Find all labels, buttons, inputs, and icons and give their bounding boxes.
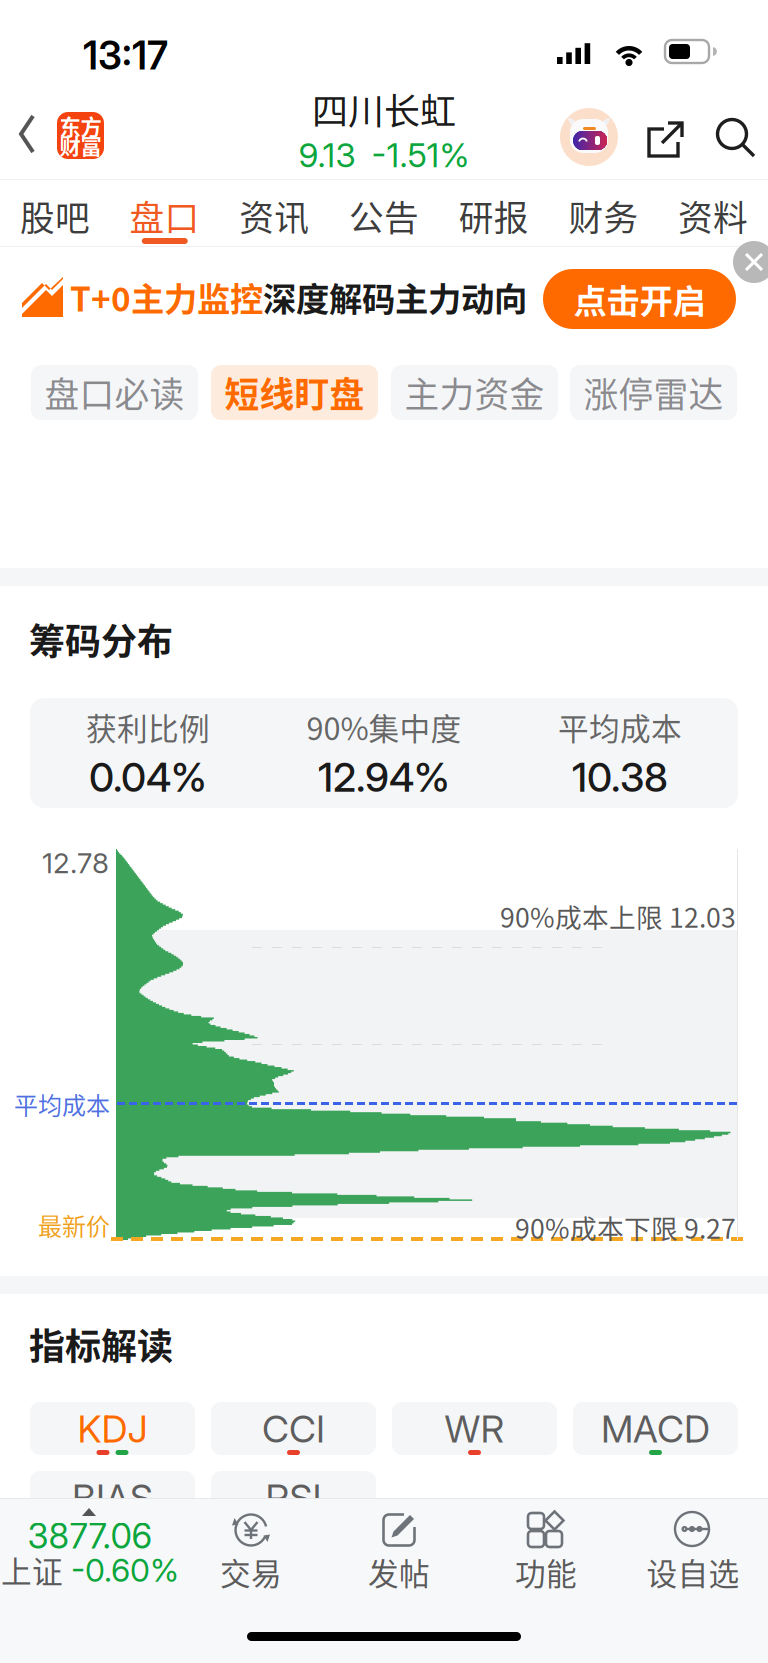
staticText: 指标解读 bbox=[29, 1318, 173, 1370]
button[interactable]: 短线盯盘 bbox=[211, 365, 378, 420]
staticText: 交易 bbox=[220, 1550, 282, 1594]
button[interactable]: 3877.06 bbox=[0, 1498, 200, 1598]
button[interactable]: 点击开启 bbox=[543, 269, 736, 329]
staticText: CCI bbox=[262, 1406, 325, 1452]
staticText: MACD bbox=[601, 1406, 710, 1452]
button[interactable]: 涨停雷达 bbox=[570, 365, 737, 420]
button[interactable]: 搜索 bbox=[707, 109, 765, 167]
staticText: 东方 bbox=[59, 111, 101, 141]
button[interactable]: 研报 bbox=[439, 180, 548, 247]
staticText: 90%成本上限 12.03 bbox=[500, 897, 736, 935]
button[interactable]: 东方财富 bbox=[57, 112, 104, 159]
button[interactable]: BIAS bbox=[30, 1471, 195, 1524]
staticText: 盘口必读 bbox=[44, 367, 184, 418]
staticText: 资料 bbox=[678, 191, 748, 241]
button[interactable]: 设自选 bbox=[626, 1498, 760, 1598]
staticText: T+0主力监控 bbox=[70, 273, 263, 321]
button[interactable]: 公告 bbox=[329, 180, 439, 247]
button[interactable]: 功能 bbox=[479, 1498, 613, 1598]
button[interactable]: WR bbox=[392, 1402, 557, 1455]
staticText: 平均成本 bbox=[14, 1087, 110, 1121]
button[interactable]: 主力资金 bbox=[391, 365, 558, 420]
staticText: BIAS bbox=[72, 1475, 153, 1521]
button[interactable]: 财务 bbox=[548, 180, 658, 247]
button[interactable]: MACD bbox=[573, 1402, 738, 1455]
staticText: 9.13 bbox=[298, 135, 355, 175]
staticText: 四川长虹 bbox=[312, 83, 456, 135]
button[interactable]: RSI bbox=[211, 1471, 376, 1524]
staticText: 财富 bbox=[59, 130, 101, 160]
staticText: 上证 bbox=[1, 1548, 63, 1592]
staticText: 10.38 bbox=[572, 753, 668, 801]
staticText: 主力资金 bbox=[404, 367, 544, 418]
button[interactable]: 股吧 bbox=[0, 180, 110, 247]
staticText: 短线盯盘 bbox=[224, 367, 364, 418]
staticText: 盘口 bbox=[130, 191, 200, 241]
button[interactable]: 返回 bbox=[0, 102, 52, 166]
button[interactable]: 资料 bbox=[658, 180, 768, 247]
staticText: 股吧 bbox=[20, 191, 90, 241]
staticText: 设自选 bbox=[646, 1550, 739, 1594]
staticText: 财务 bbox=[568, 191, 638, 241]
staticText: 平均成本 bbox=[558, 705, 682, 749]
staticText: RSI bbox=[265, 1475, 321, 1521]
staticText: -1.51% bbox=[371, 135, 469, 175]
button[interactable]: 分享 bbox=[637, 110, 695, 169]
button[interactable]: 资讯 bbox=[219, 180, 329, 247]
button[interactable]: 交易 bbox=[184, 1498, 318, 1598]
button[interactable]: 发帖 bbox=[332, 1498, 466, 1598]
staticText: 发帖 bbox=[368, 1550, 430, 1594]
staticText: 深度解码主力动向 bbox=[263, 273, 527, 321]
staticText: 点击开启 bbox=[573, 275, 705, 323]
staticText: WR bbox=[444, 1406, 504, 1452]
staticText: 涨停雷达 bbox=[583, 367, 723, 418]
staticText: 公告 bbox=[349, 191, 419, 241]
staticText: 研报 bbox=[459, 191, 529, 241]
button[interactable]: AI 助手 bbox=[560, 108, 618, 166]
staticText: 最新价 bbox=[38, 1208, 110, 1242]
staticText: 获利比例 bbox=[86, 705, 210, 749]
staticText: 筹码分布 bbox=[29, 613, 173, 665]
staticText: -0.60% bbox=[71, 1551, 179, 1589]
button[interactable]: 关闭 bbox=[733, 241, 768, 283]
button[interactable]: 盘口必读 bbox=[31, 365, 198, 420]
staticText: 功能 bbox=[515, 1550, 577, 1594]
staticText: 90%集中度 bbox=[306, 705, 461, 749]
staticText: KDJ bbox=[77, 1406, 147, 1452]
staticText: 12.94% bbox=[318, 753, 450, 801]
staticText: 资讯 bbox=[239, 191, 309, 241]
staticText: 13:17 bbox=[83, 32, 168, 79]
staticText: 90%成本下限 9.27 bbox=[515, 1208, 736, 1246]
button[interactable]: CCI bbox=[211, 1402, 376, 1455]
staticText: 12.78 bbox=[42, 846, 109, 880]
staticText: 3877.06 bbox=[27, 1515, 152, 1557]
button[interactable]: 盘口 bbox=[110, 180, 219, 247]
staticText: 0.04% bbox=[89, 753, 207, 801]
button[interactable]: KDJ bbox=[30, 1402, 195, 1455]
